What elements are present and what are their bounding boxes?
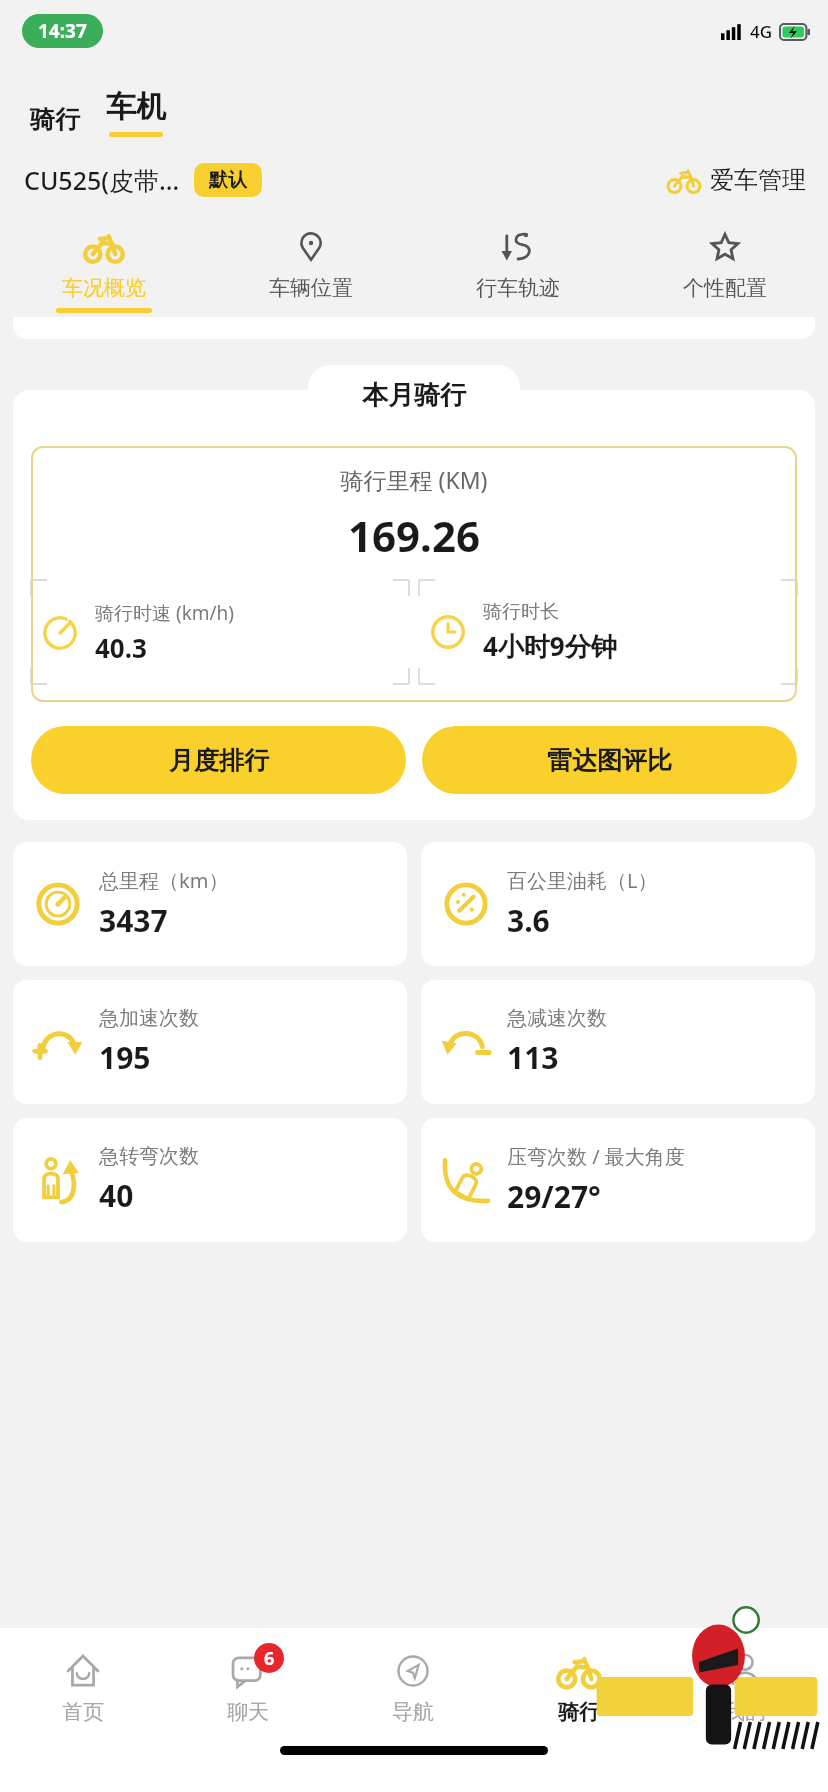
button[interactable]: 急加速次数 bbox=[13, 980, 407, 1104]
staticText: 雷达图评比 bbox=[547, 745, 672, 776]
staticText: 急加速次数 bbox=[99, 1006, 199, 1031]
staticText: 骑行时速 (km/h) bbox=[95, 600, 235, 626]
button[interactable]: 总里程（km） bbox=[13, 842, 407, 966]
staticText: 导航 bbox=[392, 1699, 434, 1725]
staticText: 车况概览 bbox=[62, 275, 146, 301]
button[interactable]: 导航 bbox=[330, 1649, 496, 1725]
button[interactable]: 爱车管理 bbox=[667, 163, 806, 197]
staticText: 个性配置 bbox=[683, 275, 767, 301]
staticText: 我的 bbox=[724, 1699, 766, 1725]
button[interactable]: 骑行 bbox=[26, 102, 84, 137]
button[interactable]: 行车轨迹 bbox=[414, 227, 621, 313]
staticText: CU525(皮带… bbox=[24, 163, 180, 197]
button[interactable]: 骑行 bbox=[496, 1649, 662, 1725]
staticText: 3.6 bbox=[507, 900, 550, 941]
staticText: 40.3 bbox=[95, 630, 147, 665]
staticText: 113 bbox=[507, 1037, 559, 1078]
staticText: 4小时9分钟 bbox=[483, 628, 617, 664]
staticText: 骑行 bbox=[30, 104, 80, 135]
button[interactable]: 急转弯次数 bbox=[13, 1118, 407, 1242]
button[interactable]: 6 bbox=[165, 1649, 330, 1725]
staticText: 169.26 bbox=[31, 507, 797, 564]
button[interactable]: 车况概览 bbox=[0, 227, 207, 313]
staticText: 6 bbox=[264, 1646, 275, 1671]
staticText: 聊天 bbox=[227, 1699, 269, 1725]
staticText: 骑行 bbox=[558, 1699, 600, 1725]
staticText: 总里程（km） bbox=[99, 867, 229, 894]
button[interactable]: 首页 bbox=[0, 1649, 165, 1725]
staticText: 首页 bbox=[62, 1699, 104, 1725]
staticText: 百公里油耗（L） bbox=[507, 867, 658, 894]
staticText: 14:37 bbox=[38, 18, 87, 44]
button[interactable]: 月度排行 bbox=[31, 726, 406, 794]
staticText: 压弯次数 / 最大角度 bbox=[507, 1143, 685, 1170]
button[interactable]: 百公里油耗（L） bbox=[421, 842, 815, 966]
button[interactable]: CU525(皮带… bbox=[24, 163, 262, 197]
staticText: 默认 bbox=[209, 168, 247, 192]
staticText: 月度排行 bbox=[169, 745, 269, 776]
staticText: 车辆位置 bbox=[269, 275, 353, 301]
button[interactable]: 急减速次数 bbox=[421, 980, 815, 1104]
staticText: 骑行里程 (KM) bbox=[31, 464, 797, 495]
staticText: 行车轨迹 bbox=[476, 275, 560, 301]
staticText: 急转弯次数 bbox=[99, 1144, 199, 1169]
staticText: 车机 bbox=[106, 88, 166, 126]
staticText: 急减速次数 bbox=[507, 1006, 607, 1031]
staticText: 骑行时长 bbox=[483, 600, 559, 624]
staticText: 4G bbox=[750, 20, 773, 43]
staticText: 195 bbox=[99, 1037, 151, 1078]
staticText: 29/27° bbox=[507, 1176, 601, 1217]
staticText: 本月骑行 bbox=[362, 379, 466, 412]
button[interactable]: 我的 bbox=[662, 1649, 828, 1725]
staticText: 40 bbox=[99, 1175, 134, 1216]
button[interactable]: 压弯次数 / 最大角度 bbox=[421, 1118, 815, 1242]
staticText: 3437 bbox=[99, 900, 168, 941]
button[interactable]: 车辆位置 bbox=[207, 227, 414, 313]
button[interactable]: 车机 bbox=[106, 88, 166, 137]
button[interactable]: 个性配置 bbox=[621, 227, 828, 313]
staticText: 爱车管理 bbox=[710, 165, 806, 195]
button[interactable]: 雷达图评比 bbox=[422, 726, 797, 794]
